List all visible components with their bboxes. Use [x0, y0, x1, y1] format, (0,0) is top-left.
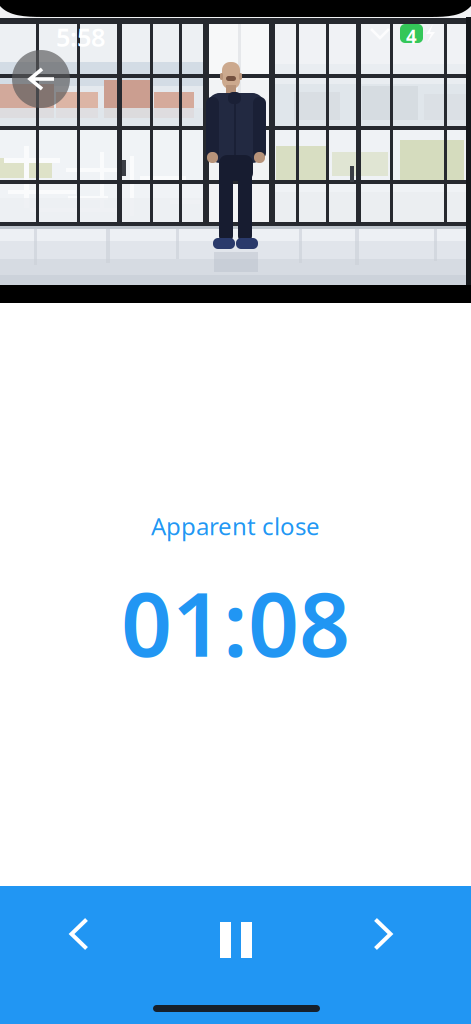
staticText: 5:58	[56, 20, 105, 54]
button[interactable]: Next	[0, 886, 108, 984]
staticText: Apparent close	[151, 510, 320, 542]
staticText: 4	[406, 24, 417, 49]
button[interactable]: Previous	[0, 886, 108, 984]
button[interactable]: Pause	[0, 886, 110, 984]
staticText: 01:08	[121, 563, 350, 681]
button[interactable]: Back	[0, 0, 471, 303]
